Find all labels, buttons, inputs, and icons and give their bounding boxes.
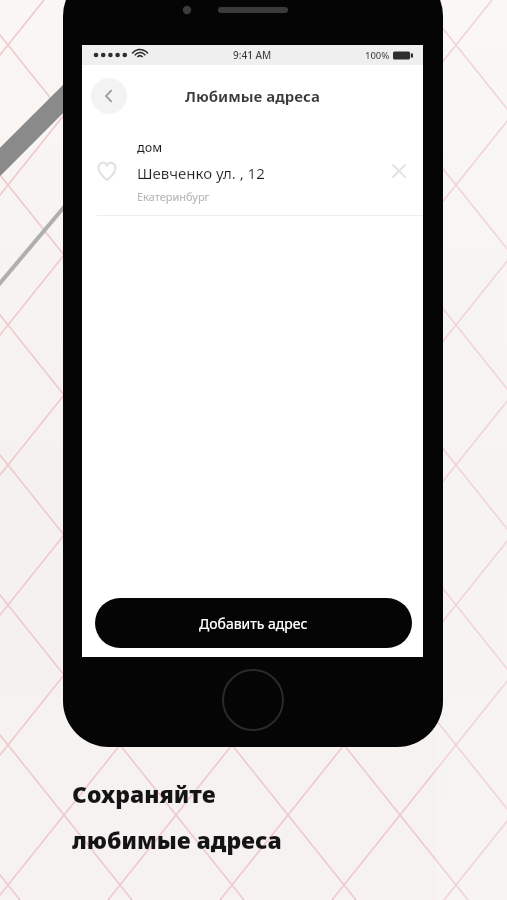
staticText: Сохраняйте — [72, 778, 216, 809]
staticText: Любимые адреса — [185, 86, 320, 106]
staticText: Екатеринбург — [137, 189, 210, 204]
button[interactable]: Back — [91, 78, 127, 114]
staticText: 100% — [365, 49, 390, 62]
button[interactable]: Remove address — [383, 155, 415, 187]
button[interactable]: Favorite — [90, 154, 124, 188]
staticText: 9:41 AM — [233, 48, 272, 62]
staticText: Добавить адрес — [199, 614, 308, 633]
staticText: любимые адреса — [72, 824, 282, 855]
staticText: дом — [137, 139, 163, 156]
button[interactable]: Favorite — [82, 127, 423, 215]
button[interactable]: Добавить адрес — [95, 598, 412, 648]
staticText: Шевченко ул. , 12 — [137, 163, 265, 183]
